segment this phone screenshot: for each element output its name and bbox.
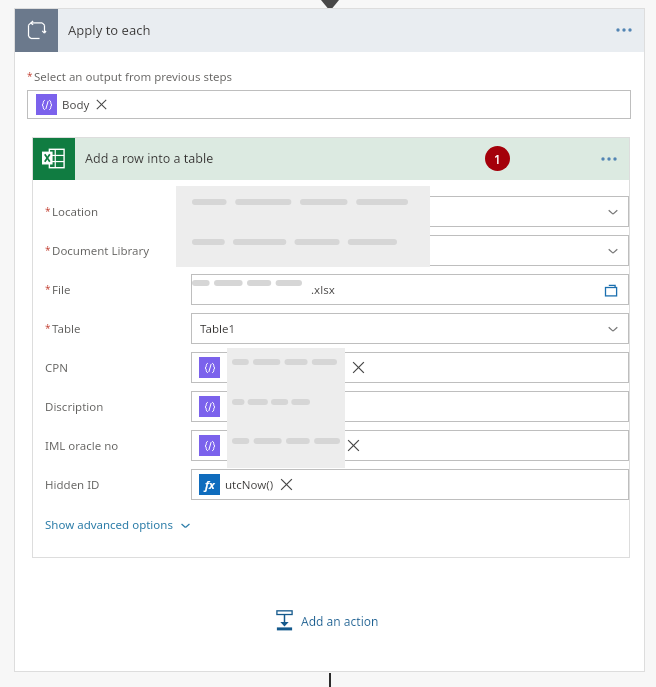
staticText: File <box>52 282 71 298</box>
button[interactable]: Clear <box>351 360 366 375</box>
button[interactable]: fx <box>191 469 629 500</box>
staticText: Hidden ID <box>45 477 100 493</box>
button[interactable]: Apply to each <box>14 8 645 52</box>
button[interactable]: More commands <box>609 15 639 45</box>
staticText: Table1 <box>200 321 236 337</box>
button[interactable]: Clear <box>191 430 629 461</box>
staticText: * <box>45 282 51 296</box>
staticText: Document Library <box>52 243 150 259</box>
staticText: Apply to each <box>68 21 151 39</box>
button[interactable]: Add an action <box>275 609 379 632</box>
staticText: fx <box>205 477 215 492</box>
staticText: Body <box>62 97 90 113</box>
button[interactable]: Body <box>27 90 631 119</box>
staticText: IML oracle no <box>45 438 119 454</box>
staticText: Location <box>52 204 99 220</box>
staticText: CPN <box>45 360 68 376</box>
staticText: Show advanced options <box>45 517 173 533</box>
staticText: * <box>45 243 51 257</box>
button[interactable]: Clear <box>279 477 294 492</box>
staticText: Discription <box>45 399 104 415</box>
staticText: * <box>27 69 33 83</box>
staticText: * <box>45 321 51 335</box>
staticText: .xlsx <box>311 282 335 298</box>
staticText: Add an action <box>301 613 379 629</box>
staticText: * <box>45 204 51 218</box>
staticText: 1 <box>494 151 501 167</box>
button[interactable]: More commands <box>594 144 624 174</box>
button[interactable]: Browse files <box>601 280 621 300</box>
button[interactable]: Show advanced options <box>45 517 191 533</box>
button[interactable]: Add a row into a table <box>32 137 630 180</box>
button[interactable]: Clear <box>346 438 361 453</box>
button[interactable] <box>191 235 629 266</box>
staticText: Select an output from previous steps <box>34 69 233 85</box>
staticText: utcNow() <box>225 477 274 493</box>
button[interactable]: Table1 <box>191 313 629 344</box>
button[interactable] <box>191 391 629 422</box>
button[interactable]: Clear <box>191 352 629 383</box>
other: Add an action <box>275 609 294 632</box>
button[interactable]: .xlsx <box>191 274 629 305</box>
button[interactable] <box>191 196 629 227</box>
button[interactable]: Clear <box>95 98 108 111</box>
staticText: Add a row into a table <box>85 150 214 167</box>
staticText: Table <box>52 321 81 337</box>
